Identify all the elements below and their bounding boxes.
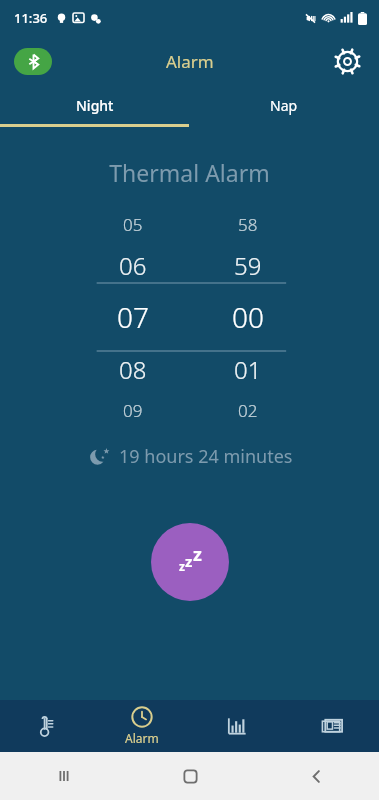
button[interactable]: Start sleep (151, 523, 229, 601)
staticText: 59 (234, 249, 262, 282)
button[interactable]: 58 (200, 206, 295, 428)
button[interactable]: Bluetooth connected (14, 48, 52, 75)
button[interactable]: Alarm (94, 700, 189, 752)
button[interactable]: 05 (85, 206, 180, 428)
staticText: 08 (119, 353, 147, 386)
staticText: Night (76, 96, 114, 115)
staticText: 07 (117, 298, 149, 336)
staticText: z (193, 542, 202, 567)
staticText: z (185, 551, 193, 571)
staticText: 00 (232, 298, 264, 336)
staticText: Thermal Alarm (109, 157, 270, 188)
button[interactable]: Back (253, 752, 379, 800)
staticText: 19 hours 24 minutes (119, 444, 293, 469)
staticText: Alarm (125, 730, 159, 746)
button[interactable]: Settings (327, 41, 367, 81)
button[interactable]: Statistics (189, 700, 284, 752)
staticText: 01 (234, 353, 262, 386)
button[interactable]: Recent apps (0, 752, 127, 800)
staticText: 06 (119, 249, 147, 282)
staticText: Alarm (166, 50, 214, 73)
staticText: 09 (123, 399, 143, 422)
staticText: z (179, 558, 185, 574)
staticText: 11:36 (14, 9, 48, 27)
staticText: 58 (238, 213, 258, 236)
button[interactable]: Home (127, 752, 253, 800)
button[interactable]: Thermometer (0, 700, 94, 752)
staticText: 02 (238, 399, 258, 422)
button[interactable]: News (284, 700, 379, 752)
staticText: Nap (270, 96, 298, 115)
staticText: 05 (123, 213, 143, 236)
button[interactable]: Night (0, 86, 189, 124)
button[interactable]: Nap (189, 86, 379, 124)
